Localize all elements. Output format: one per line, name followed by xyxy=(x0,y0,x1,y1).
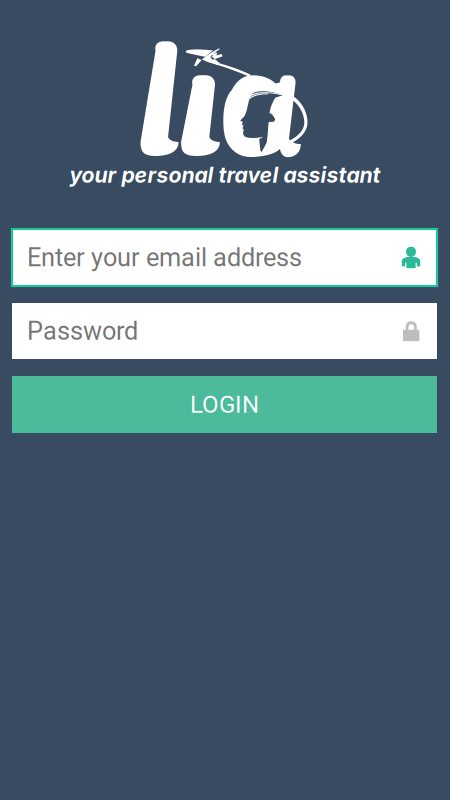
staticText: Password xyxy=(27,316,138,346)
staticText: LOGIN xyxy=(190,390,259,418)
staticText: your personal travel assistant xyxy=(69,162,380,188)
staticText: Enter your email address xyxy=(27,243,302,272)
button[interactable]: Enter your email address xyxy=(12,229,437,286)
button[interactable]: LOGIN xyxy=(12,376,437,433)
button[interactable]: Password xyxy=(12,303,437,359)
